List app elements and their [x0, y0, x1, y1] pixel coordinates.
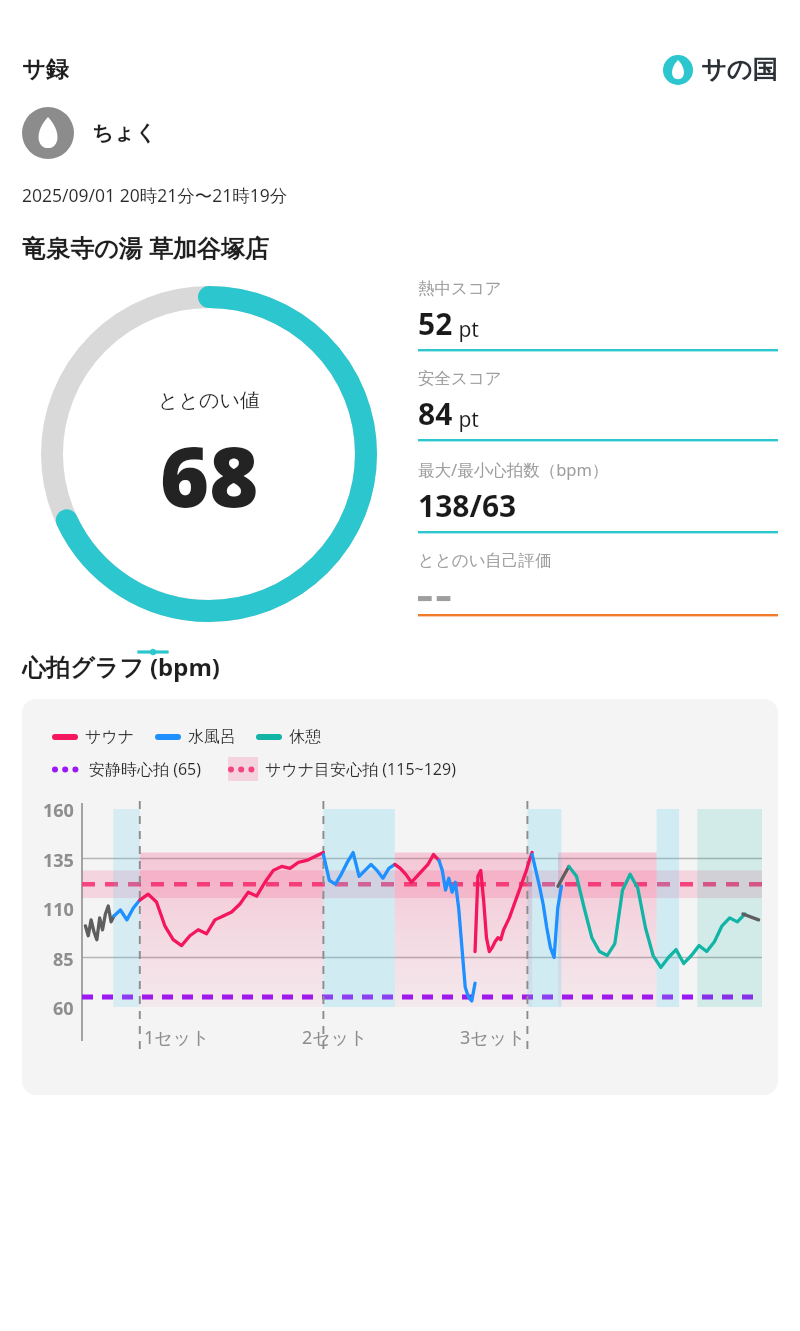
button[interactable]: 最大/最小心拍数（bpm）	[418, 458, 778, 550]
staticText: 休憩	[289, 727, 321, 747]
button[interactable]: サの国 home	[663, 54, 778, 85]
staticText: サウナ目安心拍 (115~129)	[265, 758, 456, 780]
staticText: 52	[418, 303, 453, 344]
staticText: 水風呂	[188, 727, 236, 747]
staticText: サ録	[22, 55, 69, 84]
staticText: 2025/09/01 20時21分〜21時19分	[22, 183, 288, 207]
staticText: 1セット	[144, 1025, 210, 1050]
button[interactable]: 安全スコア	[418, 368, 778, 458]
staticText: pt	[453, 315, 479, 344]
staticText: ちょく	[92, 120, 157, 146]
staticText: pt	[453, 405, 479, 434]
staticText: 68	[160, 417, 259, 531]
staticText: 心拍グラフ (bpm)	[22, 650, 220, 683]
staticText: 135	[43, 848, 74, 873]
staticText: 最大/最小心拍数（bpm）	[418, 458, 609, 481]
staticText: 110	[43, 897, 74, 922]
staticText: 2セット	[302, 1025, 368, 1050]
staticText: ととのい値	[158, 388, 260, 413]
staticText: 160	[43, 798, 74, 823]
staticText: 安静時心拍 (65)	[89, 758, 202, 780]
staticText: 85	[53, 947, 74, 972]
staticText: ととのい自己評価	[418, 550, 552, 571]
button[interactable]: ちょく	[22, 107, 778, 159]
staticText: 3セット	[460, 1025, 526, 1050]
staticText: 60	[53, 996, 74, 1021]
staticText: 熱中スコア	[418, 278, 502, 299]
staticText: 竜泉寺の湯 草加谷塚店	[22, 231, 269, 264]
staticText: サウナ	[85, 727, 135, 747]
button[interactable]: サウナ	[22, 699, 778, 1095]
staticText: 84	[418, 393, 453, 434]
staticText: サの国	[701, 54, 778, 85]
staticText: 安全スコア	[418, 368, 502, 389]
staticText: 138/63	[418, 485, 517, 526]
button[interactable]: ととのい自己評価	[418, 550, 778, 633]
button[interactable]: 熱中スコア	[418, 278, 778, 368]
